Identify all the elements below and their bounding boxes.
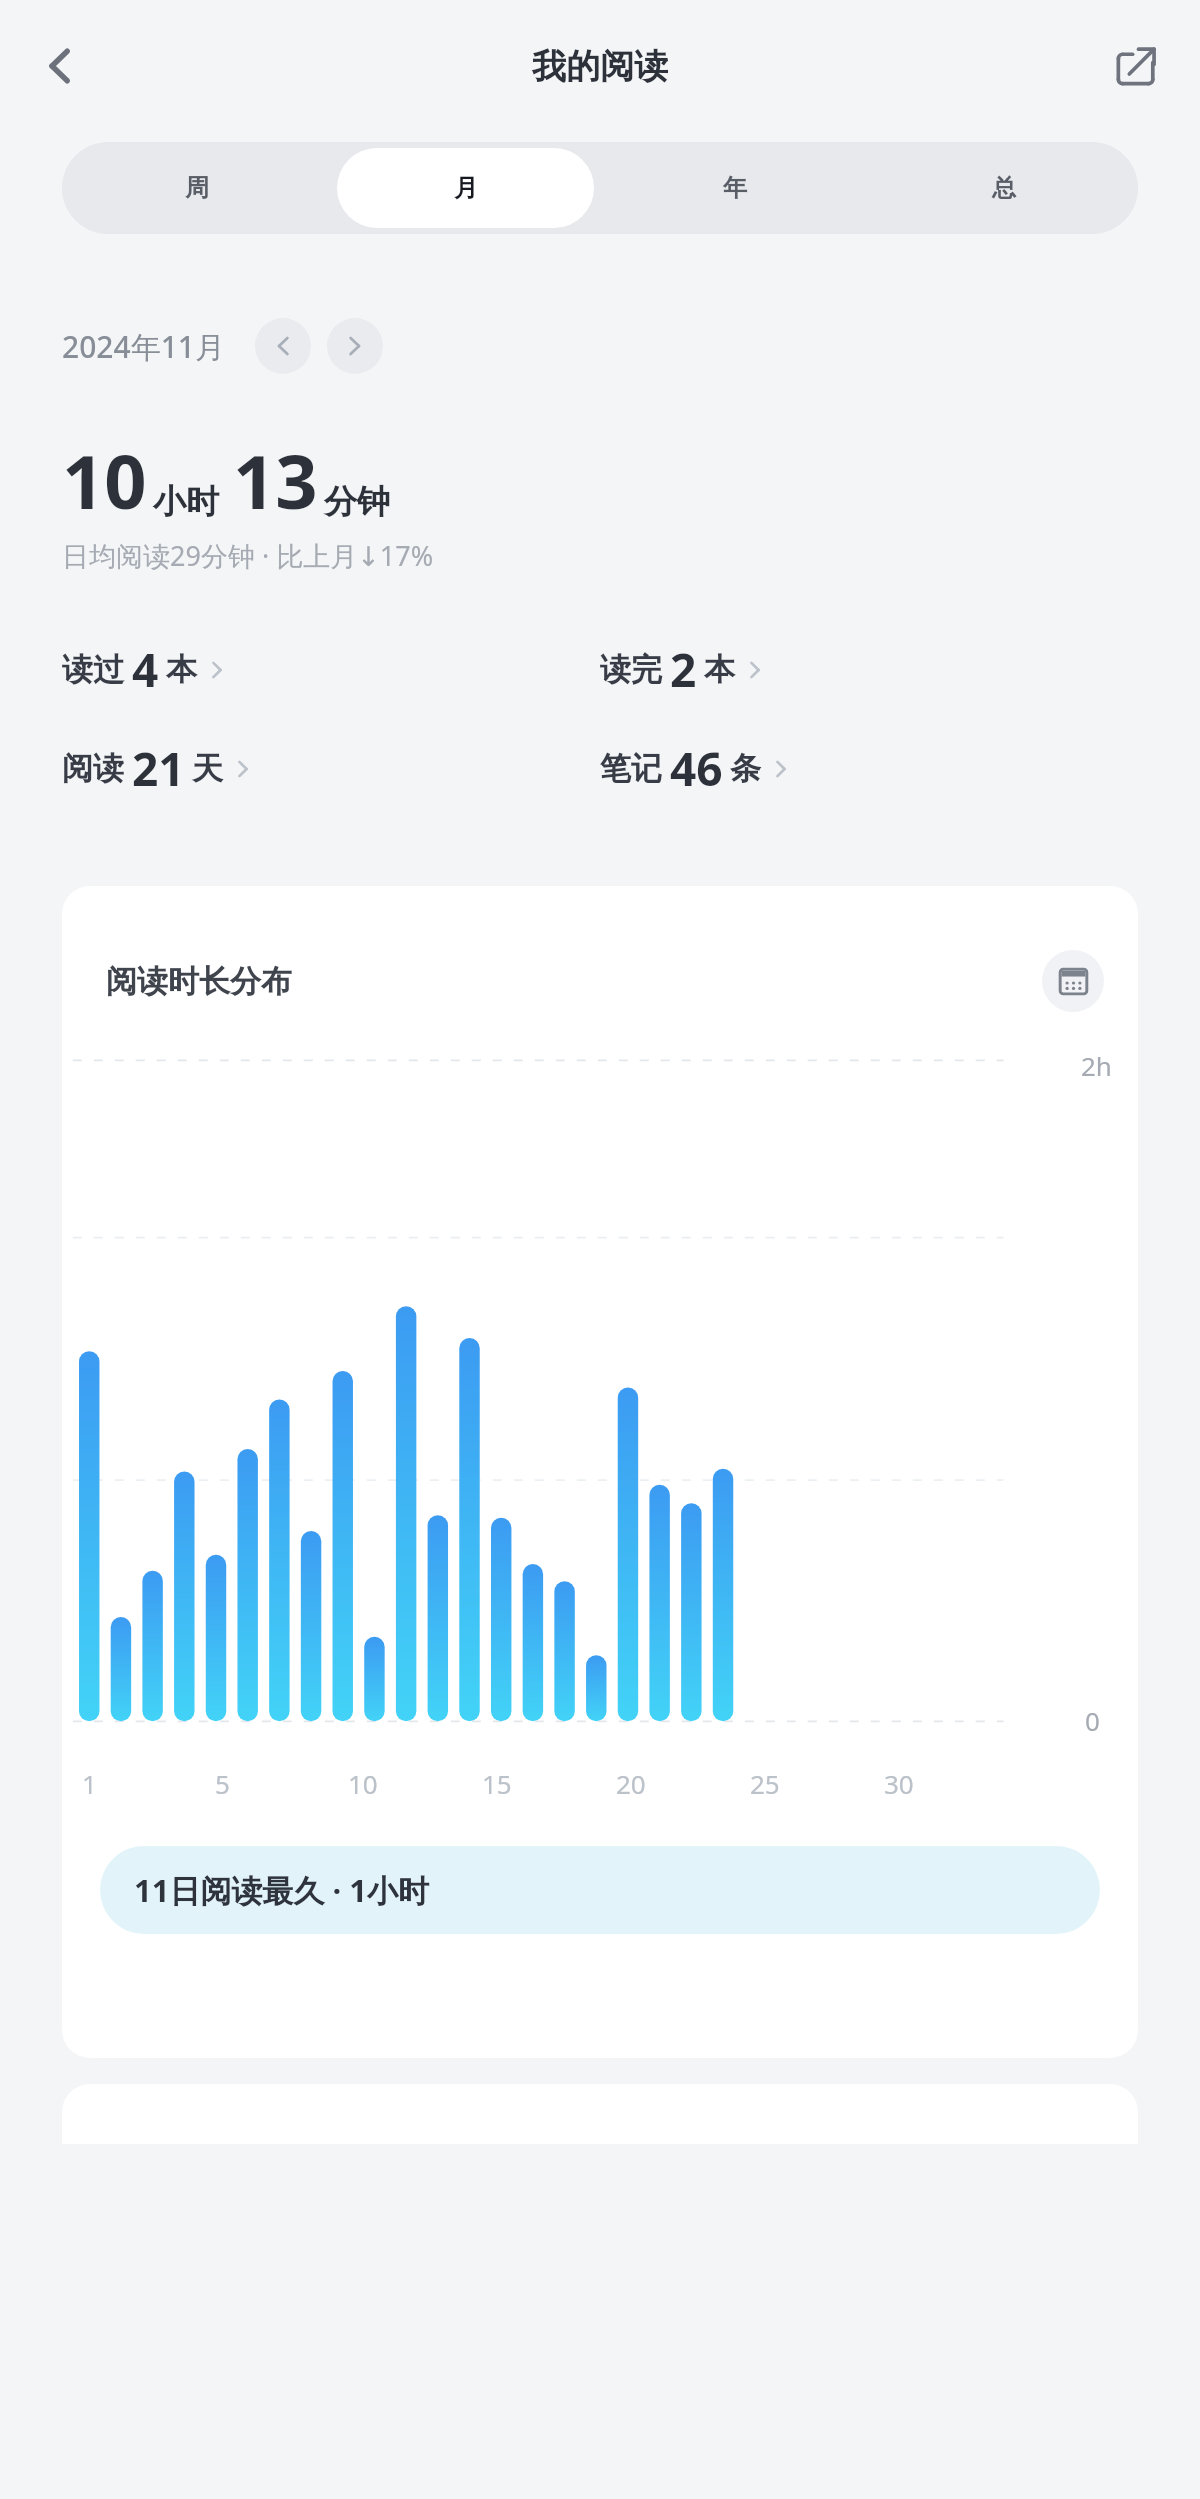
staticText: 条: [730, 749, 761, 788]
staticText: 读过: [62, 650, 124, 689]
staticText: 周: [185, 173, 209, 203]
button[interactable]: Previous month: [255, 318, 311, 374]
staticText: 本: [704, 650, 735, 689]
staticText: 2h: [1081, 1048, 1112, 1083]
staticText: 1: [82, 1766, 97, 1801]
staticText: 分钟: [324, 481, 390, 523]
button[interactable]: 读过: [62, 638, 600, 701]
staticText: 4: [132, 638, 159, 701]
staticText: 11日阅读最久 · 1小时: [134, 1869, 430, 1911]
staticText: 15: [482, 1766, 512, 1801]
staticText: 日均阅读29分钟 · 比上月↓17%: [62, 537, 434, 574]
button[interactable]: 读完: [600, 638, 1138, 701]
staticText: 25: [750, 1766, 780, 1801]
staticText: 我的阅读: [532, 45, 668, 88]
staticText: 本: [166, 650, 197, 689]
button[interactable]: Calendar: [1042, 950, 1104, 1012]
staticText: 46: [670, 737, 723, 800]
staticText: 0: [1085, 1703, 1100, 1738]
staticText: 2: [670, 638, 697, 701]
button[interactable]: Back: [22, 28, 98, 104]
staticText: 月: [454, 173, 478, 203]
staticText: 笔记: [600, 749, 662, 788]
staticText: 10: [348, 1766, 378, 1801]
staticText: 5: [215, 1766, 230, 1801]
staticText: 小时: [153, 481, 219, 523]
button[interactable]: 总: [875, 148, 1132, 228]
staticText: 总: [992, 173, 1016, 203]
staticText: 年: [723, 173, 747, 203]
staticText: 阅读: [62, 749, 124, 788]
staticText: 阅读时长分布: [106, 962, 292, 1001]
button[interactable]: 笔记: [600, 737, 1138, 800]
button[interactable]: Share: [1098, 28, 1174, 104]
staticText: 天: [192, 749, 223, 788]
staticText: 20: [616, 1766, 646, 1801]
button[interactable]: 年: [606, 148, 863, 228]
button[interactable]: Next month: [327, 318, 383, 374]
button[interactable]: 11日阅读最久 · 1小时: [100, 1846, 1100, 1934]
staticText: 2024年11月: [62, 326, 225, 367]
staticText: 读完: [600, 650, 662, 689]
button[interactable]: 周: [68, 148, 325, 228]
staticText: 21: [132, 737, 185, 800]
staticText: 10: [62, 430, 147, 531]
button[interactable]: 阅读: [62, 737, 600, 800]
staticText: 30: [884, 1766, 914, 1801]
button[interactable]: 月: [337, 148, 594, 228]
staticText: 13: [233, 430, 318, 531]
